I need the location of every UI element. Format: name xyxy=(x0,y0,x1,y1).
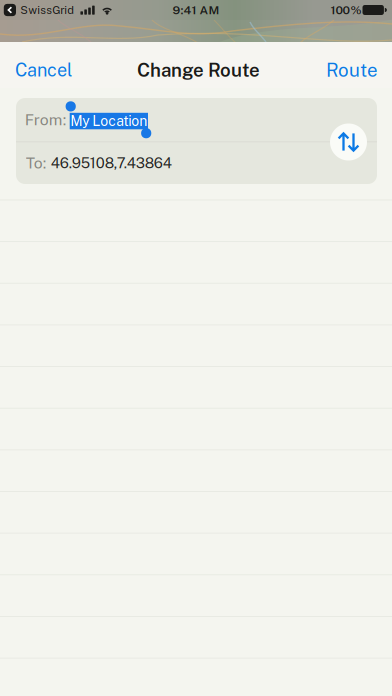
staticText: 9:41 AM xyxy=(172,3,219,17)
staticText: 100% xyxy=(330,3,361,17)
staticText: To: xyxy=(26,154,47,172)
button[interactable]: Swap start and destination xyxy=(330,123,367,160)
button[interactable]: Cancel xyxy=(0,42,100,98)
staticText: My Location xyxy=(70,113,147,129)
staticText: 46.95108,7.43864 xyxy=(51,154,172,171)
staticText: Route xyxy=(326,59,378,81)
staticText: From: xyxy=(25,110,67,129)
staticText: SwissGrid xyxy=(20,3,74,17)
staticText: Change Route xyxy=(137,59,260,81)
staticText: Cancel xyxy=(15,59,72,80)
button[interactable]: Route xyxy=(311,42,391,98)
